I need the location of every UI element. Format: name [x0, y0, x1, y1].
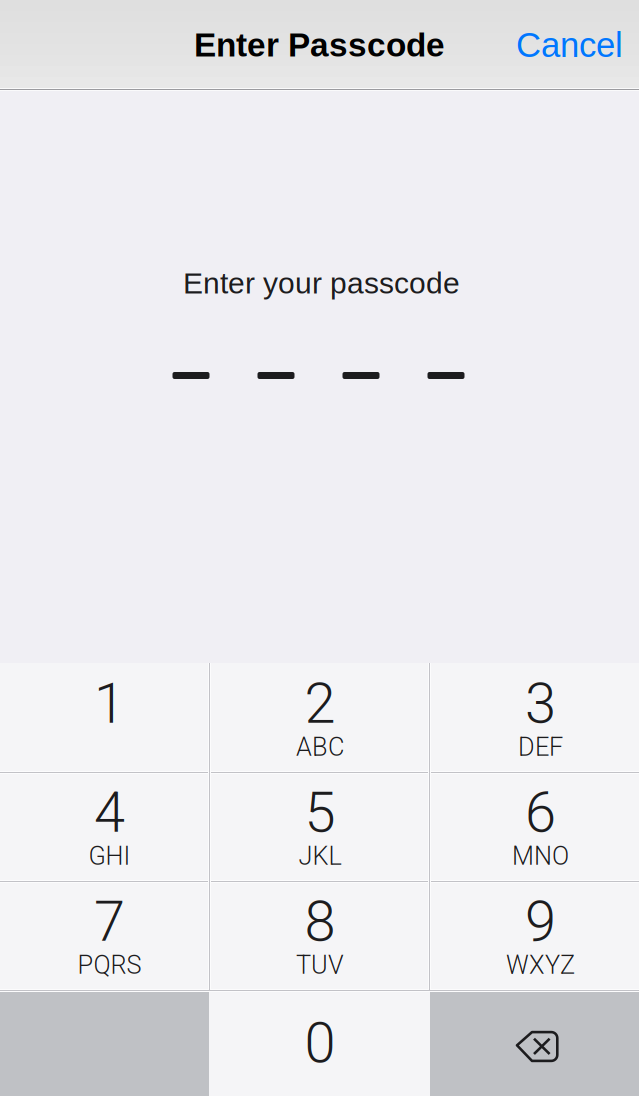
staticText: Cancel [516, 26, 623, 64]
staticText: DEF [518, 732, 563, 762]
button[interactable]: 3 [431, 664, 637, 770]
staticText: WXYZ [506, 950, 575, 980]
button[interactable]: 5 [211, 773, 428, 879]
button[interactable]: 7 [1, 882, 207, 988]
staticText: JKL [298, 841, 341, 871]
button[interactable]: 2 [211, 664, 428, 770]
button[interactable]: 8 [211, 882, 428, 988]
staticText: ABC [296, 732, 344, 762]
staticText: MNO [512, 841, 569, 871]
staticText: 1 [94, 671, 125, 736]
button[interactable]: 1 [1, 664, 207, 770]
staticText: 4 [94, 780, 125, 845]
staticText: 9 [525, 889, 556, 954]
staticText: 5 [304, 780, 335, 845]
staticText: 2 [304, 671, 335, 736]
staticText: 6 [525, 780, 556, 845]
staticText: PQRS [77, 950, 141, 980]
staticText: 0 [304, 1010, 335, 1076]
staticText: TUV [296, 950, 344, 980]
button[interactable]: Cancel [483, 10, 623, 80]
button[interactable]: 4 [1, 773, 207, 879]
staticText: 8 [304, 889, 335, 954]
button[interactable]: 0 [211, 991, 428, 1096]
button[interactable]: 6 [431, 773, 637, 879]
staticText: Enter Passcode [194, 26, 445, 64]
staticText: Enter your passcode [183, 266, 460, 300]
button[interactable]: Delete [430, 990, 639, 1096]
button[interactable]: 9 [431, 882, 637, 988]
staticText: GHI [88, 841, 130, 871]
staticText: 7 [94, 889, 125, 954]
staticText: 3 [525, 671, 556, 736]
